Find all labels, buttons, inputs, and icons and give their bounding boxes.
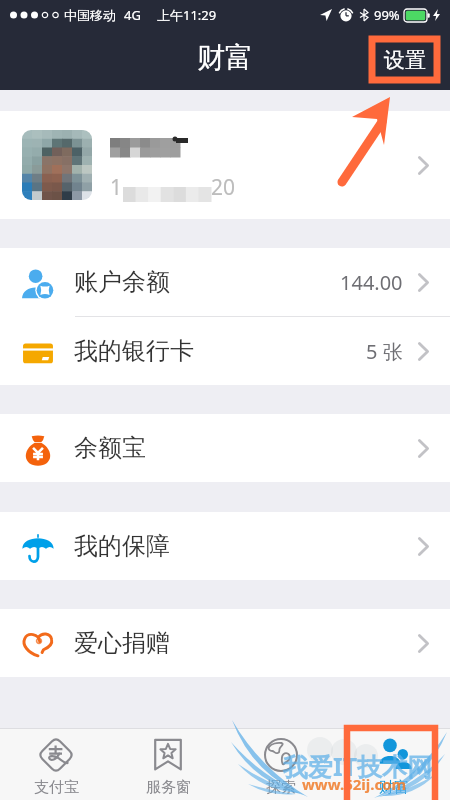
staticText: 1 <box>110 173 123 202</box>
staticText: 财富 <box>379 778 409 797</box>
staticText: 我的银行卡 <box>74 336 194 366</box>
staticText: 余额宝 <box>74 433 146 463</box>
button[interactable]: 支付宝 <box>0 729 112 800</box>
staticText: 5 张 <box>366 338 403 365</box>
staticText: 支付宝 <box>34 778 79 797</box>
staticText: 中国移动 <box>64 7 116 23</box>
staticText: 我爱IT技术网 <box>283 749 433 783</box>
button[interactable]: 服务窗 <box>112 729 224 800</box>
staticText: 20 <box>211 173 236 202</box>
staticText: 设置 <box>384 47 426 73</box>
staticText: 144.00 <box>340 269 403 296</box>
button[interactable]: 设置 <box>372 39 437 80</box>
button[interactable]: 爱心捐赠 <box>0 609 450 677</box>
staticText: 财富 <box>197 40 253 75</box>
staticText: 服务窗 <box>146 778 191 797</box>
button[interactable]: 我的银行卡 <box>0 317 450 385</box>
button[interactable]: 探索 <box>224 729 337 800</box>
staticText: 4G <box>124 6 141 24</box>
staticText: 我的保障 <box>74 531 170 561</box>
button[interactable]: 账户余额 <box>0 248 450 316</box>
button[interactable]: 财富 <box>337 729 450 800</box>
button[interactable]: 1 <box>0 111 450 219</box>
button[interactable]: 余额宝 <box>0 414 450 482</box>
staticText: 探索 <box>266 778 296 797</box>
staticText: 账户余额 <box>74 267 170 297</box>
staticText: 爱心捐赠 <box>74 628 170 658</box>
staticText: 上午11:29 <box>157 6 217 24</box>
button[interactable]: 我的保障 <box>0 512 450 580</box>
staticText: 99% <box>374 6 400 24</box>
staticText: www.52ij.com <box>302 774 407 794</box>
